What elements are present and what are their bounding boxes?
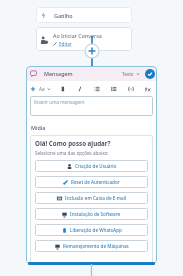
button[interactable]: Inserir uma mensagem: [30, 96, 153, 116]
button[interactable]: Lista: [92, 84, 101, 93]
button[interactable]: Aa: [39, 86, 51, 92]
staticText: Olá! Como posso ajudar?: [35, 139, 111, 147]
button[interactable]: Mais opções: [144, 69, 153, 78]
button[interactable]: Itálico: [75, 84, 84, 93]
staticText: Gatilho: [54, 12, 73, 19]
staticText: Remanejamento de Máquinas: [63, 243, 129, 249]
staticText: Mídia: [31, 124, 46, 131]
staticText: Inclusão em Caixa de E-mail: [65, 195, 127, 201]
button[interactable]: Alinhamento: [109, 84, 118, 93]
button[interactable]: Texto: [122, 71, 140, 77]
staticText: Selecione uma das opções abaixo:: [35, 150, 109, 156]
button[interactable]: Confirmar: [145, 69, 155, 79]
staticText: Ao Iniciar Conversa: [53, 32, 102, 39]
button[interactable]: Variável: [126, 84, 135, 93]
button[interactable]: Adicionar: [29, 85, 37, 93]
staticText: Aa: [39, 86, 45, 92]
button[interactable]: Instalação de Software: [35, 208, 148, 220]
staticText: Texto: [122, 71, 134, 77]
staticText: Reset de Autenticador: [71, 179, 120, 185]
staticText: Criação de Usuário: [75, 163, 117, 169]
button[interactable]: Remanejamento de Máquinas: [35, 240, 148, 252]
button[interactable]: Liberação de WhatsApp: [35, 224, 148, 236]
staticText: Liberação de WhatsApp: [70, 227, 122, 233]
button[interactable]: Negrito: [58, 84, 67, 93]
staticText: Editar: [59, 41, 72, 47]
button[interactable]: Mensagem: [26, 66, 157, 81]
button[interactable]: Função: [143, 84, 152, 93]
button[interactable]: Inclusão em Caixa de E-mail: [35, 192, 148, 204]
button[interactable]: Editar: [59, 41, 72, 47]
staticText: Mensagem: [44, 70, 73, 77]
button[interactable]: Criação de Usuário: [35, 160, 148, 172]
button[interactable]: Gatilho: [36, 7, 132, 23]
button[interactable]: Reset de Autenticador: [35, 176, 148, 188]
button[interactable]: Ao Iniciar Conversa: [36, 27, 132, 51]
staticText: Inserir uma mensagem: [34, 99, 85, 105]
staticText: Instalação de Software: [70, 211, 121, 217]
